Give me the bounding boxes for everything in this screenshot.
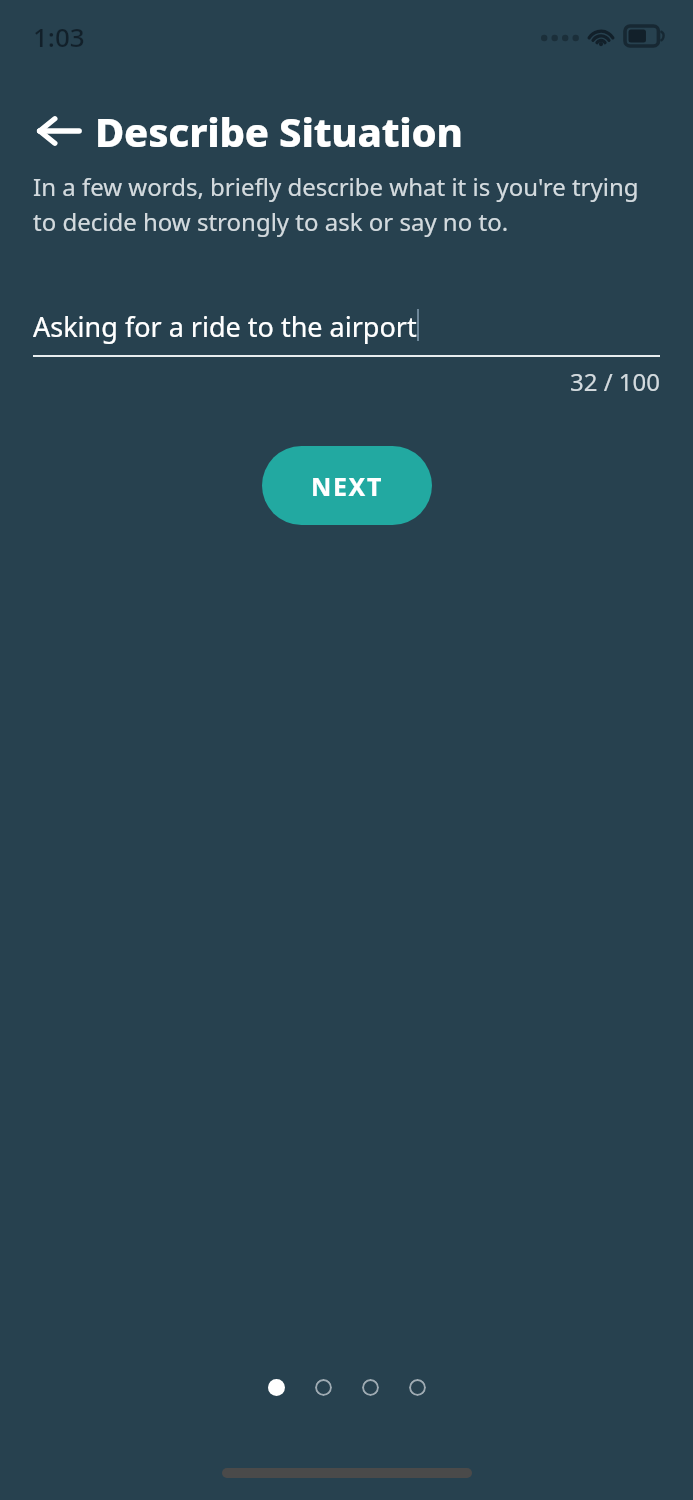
button[interactable]: Page 3 (362, 1379, 379, 1396)
button[interactable]: Page 4 (409, 1379, 426, 1396)
staticText: In a few words, briefly describe what it… (33, 170, 663, 238)
button[interactable]: Page 2 (315, 1379, 332, 1396)
staticText: NEXT (311, 469, 383, 503)
button[interactable]: Back (33, 105, 85, 157)
staticText: 1:03 (33, 19, 85, 54)
staticText: 32 / 100 (33, 365, 660, 398)
button[interactable]: Page 1 (268, 1379, 285, 1396)
staticText: Asking for a ride to the airport (33, 308, 417, 345)
button[interactable]: Asking for a ride to the airport (33, 308, 660, 398)
staticText: Describe Situation (95, 104, 463, 158)
button[interactable]: NEXT (262, 446, 432, 525)
